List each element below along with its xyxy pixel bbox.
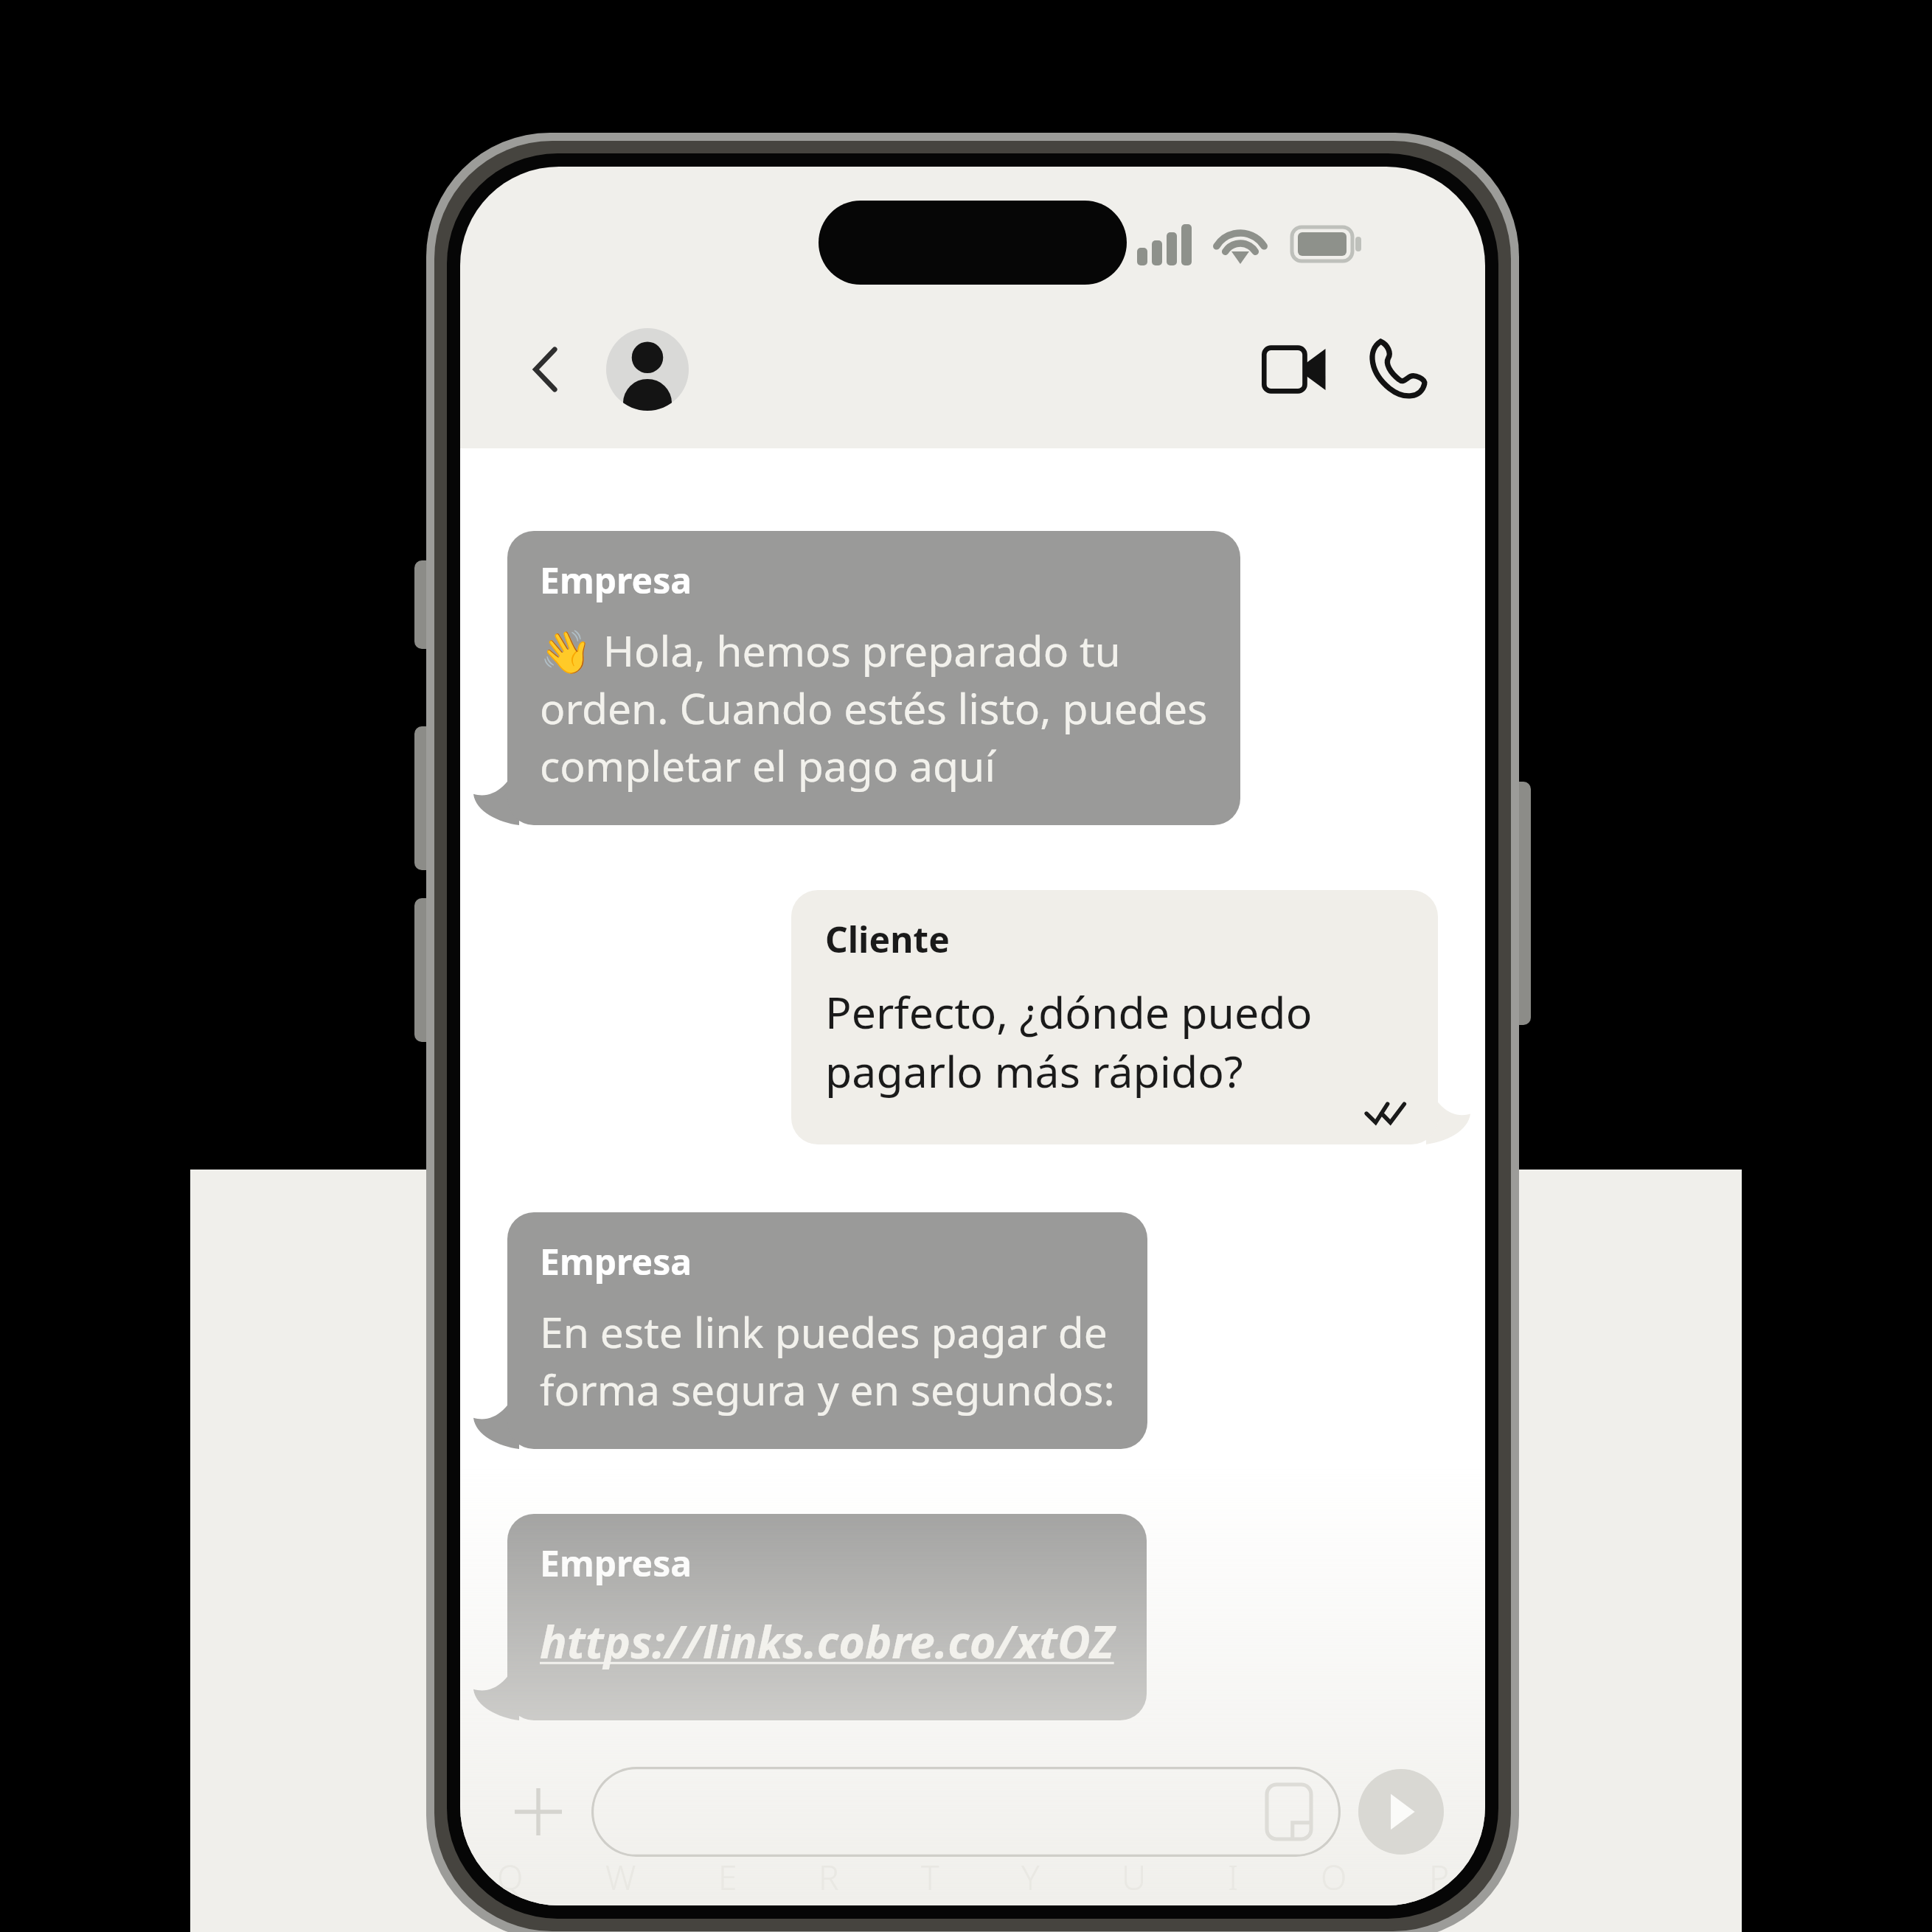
staticText: orden. Cuando estés listo, puedes: [540, 679, 1208, 737]
button[interactable]: Video call: [1249, 323, 1342, 416]
staticText: W: [605, 1854, 636, 1900]
button[interactable]: [591, 1767, 1341, 1857]
staticText: Y: [1021, 1854, 1040, 1900]
staticText: https://links.cobre.co/xtOZ: [540, 1610, 1114, 1672]
staticText: Empresa: [540, 1237, 692, 1285]
staticText: I: [1228, 1854, 1239, 1900]
staticText: Perfecto, ¿dónde puedo: [825, 982, 1313, 1041]
button[interactable]: Empresa: [507, 531, 1240, 825]
button[interactable]: Attach: [501, 1775, 575, 1849]
staticText: R: [819, 1854, 839, 1900]
button[interactable]: Empresa: [507, 1514, 1147, 1720]
button[interactable]: Back: [504, 328, 587, 411]
staticText: completar el pago aquí: [540, 737, 995, 794]
staticText: T: [921, 1854, 939, 1900]
button[interactable]: Voice call: [1349, 323, 1442, 416]
staticText: Empresa: [540, 1539, 692, 1587]
staticText: Cliente: [825, 915, 950, 963]
staticText: 👋 Hola, hemos preparado tu: [540, 622, 1121, 679]
button[interactable]: Empresa: [507, 1212, 1147, 1449]
staticText: pagarlo más rápido?: [825, 1041, 1243, 1100]
staticText: Empresa: [540, 556, 692, 604]
button[interactable]: Cliente: [791, 890, 1438, 1144]
staticText: Q: [497, 1854, 524, 1900]
staticText: E: [718, 1854, 737, 1900]
staticText: P: [1429, 1854, 1450, 1900]
staticText: forma segura y en segundos:: [540, 1361, 1115, 1418]
button[interactable]: Send: [1358, 1769, 1444, 1855]
staticText: En este link puedes pagar de: [540, 1303, 1108, 1361]
staticText: U: [1122, 1854, 1147, 1900]
button[interactable]: Contact avatar: [606, 328, 689, 411]
